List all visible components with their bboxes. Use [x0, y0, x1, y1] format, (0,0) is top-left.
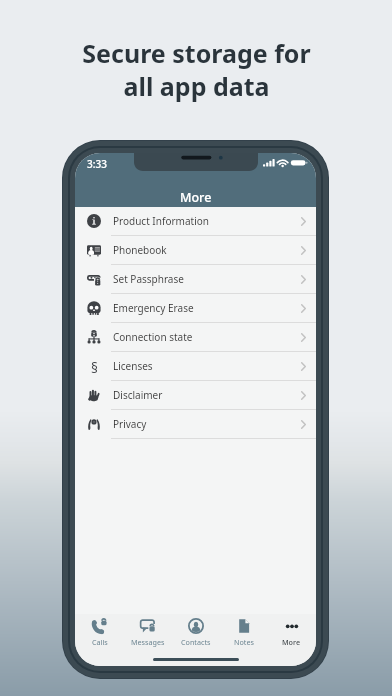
staticText: Calls [92, 637, 108, 647]
staticText: Emergency Erase [113, 301, 194, 315]
other: Messages [140, 618, 156, 634]
button[interactable]: Contacts [172, 618, 219, 647]
button[interactable]: More [268, 618, 315, 647]
staticText: Set Passphrase [113, 272, 184, 286]
button[interactable]: Emergency Erase [75, 294, 316, 323]
staticText: § [91, 359, 98, 373]
staticText: Connection state [113, 330, 193, 344]
staticText: More [180, 189, 212, 206]
staticText: Licenses [113, 359, 153, 373]
button[interactable]: Calls [76, 618, 123, 647]
other: Contacts [188, 618, 204, 634]
staticText: Messages [131, 637, 165, 647]
other: More [284, 618, 300, 634]
button[interactable]: § [75, 352, 316, 381]
staticText: Phonebook [113, 243, 167, 257]
staticText: More [282, 637, 301, 647]
button[interactable]: Disclaimer [75, 381, 316, 410]
other: Notes [236, 618, 252, 634]
staticText: Privacy [113, 417, 147, 431]
staticText: 3:33 [87, 157, 107, 171]
button[interactable]: Privacy [75, 410, 316, 439]
button[interactable]: Product Information [75, 207, 316, 236]
button[interactable]: Phonebook [75, 236, 316, 265]
button[interactable]: Notes [220, 618, 267, 647]
other: Calls [92, 618, 108, 634]
button[interactable]: Set Passphrase [75, 265, 316, 294]
staticText: Product Information [113, 214, 209, 228]
button[interactable]: Messages [124, 618, 171, 647]
button[interactable]: Connection state [75, 323, 316, 352]
staticText: Secure storage for all app data [82, 36, 311, 104]
staticText: Contacts [181, 637, 211, 647]
staticText: Disclaimer [113, 388, 163, 402]
staticText: Notes [234, 637, 254, 647]
